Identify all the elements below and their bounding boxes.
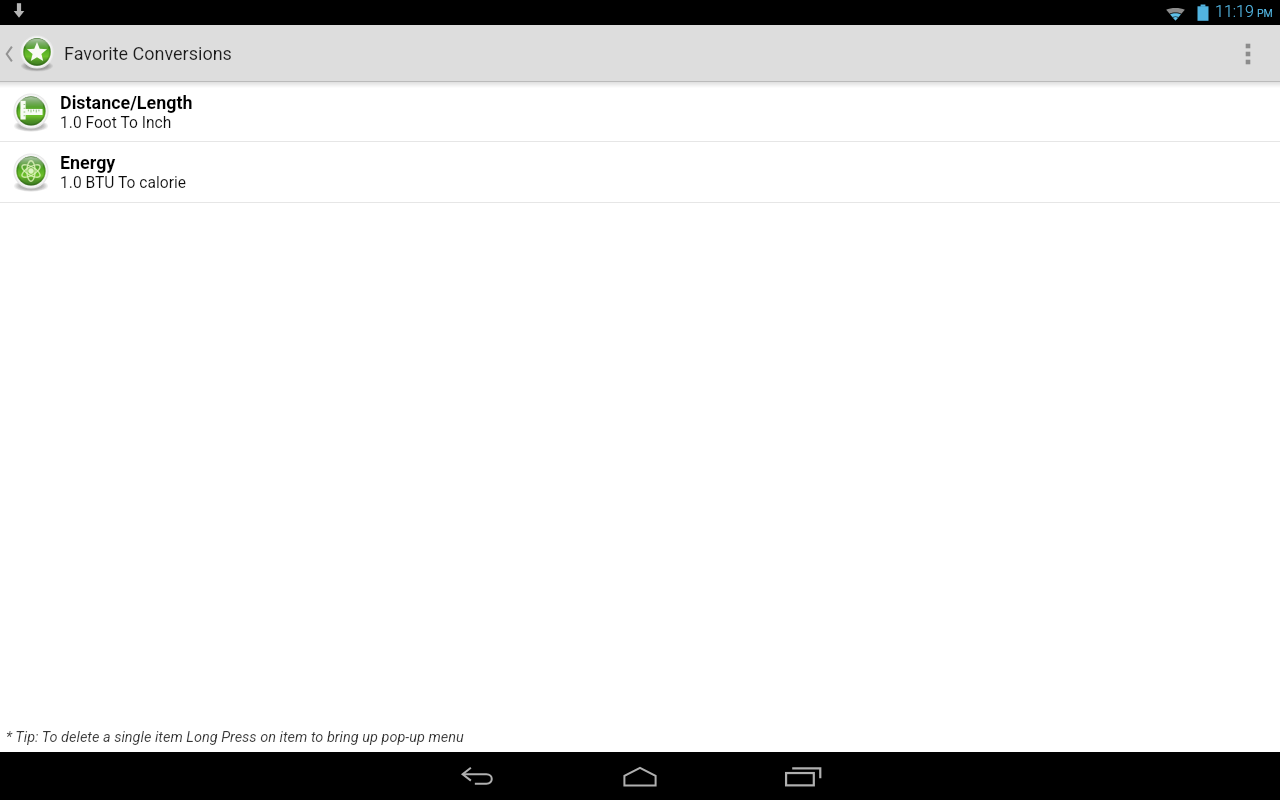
staticText: PM: [1257, 7, 1273, 19]
staticText: Favorite Conversions: [64, 43, 232, 64]
button[interactable]: Energy: [0, 142, 1280, 202]
button[interactable]: Navigate up: [0, 25, 60, 82]
staticText: 1.0 Foot To Inch: [60, 114, 172, 132]
button[interactable]: More options: [1216, 25, 1280, 82]
other: Navigate up: [2, 36, 16, 72]
button[interactable]: Recent apps: [763, 752, 843, 800]
staticText: Energy: [60, 152, 116, 173]
button[interactable]: Home: [600, 752, 680, 800]
staticText: * Tip: To delete a single item Long Pres…: [6, 729, 464, 746]
staticText: 1.0 BTU To calorie: [60, 174, 186, 192]
staticText: Distance/Length: [60, 92, 193, 113]
staticText: 11:19: [1215, 2, 1254, 21]
button[interactable]: Back: [437, 752, 517, 800]
button[interactable]: Distance/Length: [0, 82, 1280, 141]
